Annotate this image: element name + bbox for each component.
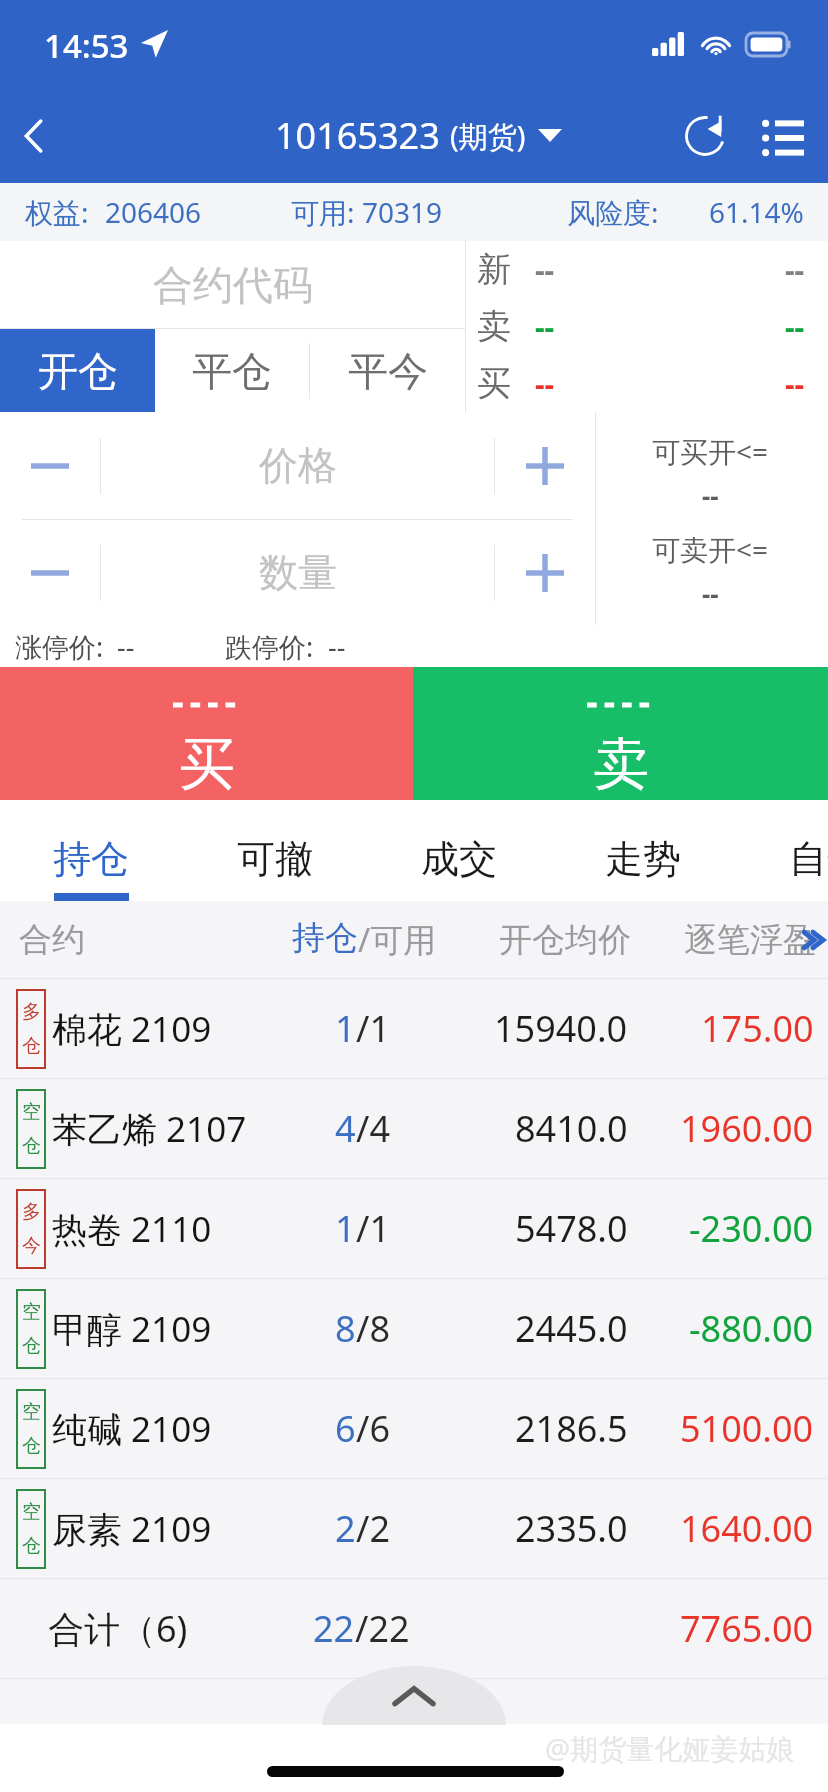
staticText: 仓: [22, 1434, 41, 1458]
button[interactable]: 空: [0, 1379, 828, 1478]
staticText: 持仓: [53, 835, 129, 883]
button[interactable]: Decrease: [0, 520, 100, 625]
staticText: 开仓: [38, 346, 118, 396]
staticText: 1640.00: [680, 1504, 814, 1553]
staticText: --: [328, 628, 346, 665]
button[interactable]: 空: [0, 1279, 828, 1378]
button[interactable]: Increase: [495, 520, 595, 625]
staticText: 合约: [19, 919, 85, 961]
staticText: 可用:: [291, 193, 355, 231]
staticText: 8410.0: [515, 1104, 628, 1153]
button[interactable]: 卖: [413, 667, 828, 800]
staticText: 合计（6): [48, 1604, 188, 1653]
button[interactable]: Refresh: [666, 97, 744, 175]
button[interactable]: 自选: [735, 820, 828, 901]
button[interactable]: 成交: [367, 820, 551, 901]
staticText: 多: [22, 1200, 41, 1224]
button[interactable]: 空: [0, 1079, 828, 1178]
button[interactable]: 买: [0, 667, 413, 800]
staticText: 1: [335, 1204, 356, 1253]
staticText: /6: [356, 1404, 390, 1453]
staticText: 逐笔浮盈: [684, 919, 816, 961]
button[interactable]: 可撤: [183, 820, 367, 901]
button[interactable]: 合计（6): [0, 1579, 828, 1678]
button[interactable]: 持仓: [0, 820, 183, 901]
staticText: /1: [356, 1004, 390, 1053]
staticText: 卖: [593, 729, 649, 800]
button[interactable]: Increase: [495, 412, 595, 519]
staticText: 5100.00: [680, 1404, 814, 1453]
staticText: 22: [313, 1604, 355, 1653]
staticText: 新: [477, 248, 511, 291]
staticText: 8: [335, 1304, 356, 1353]
staticText: -880.00: [689, 1304, 814, 1353]
staticText: 6: [335, 1404, 356, 1453]
staticText: 14:53: [44, 23, 129, 68]
staticText: 仓: [22, 1534, 41, 1558]
button[interactable]: 数量: [101, 520, 494, 625]
staticText: 纯碱 2109: [52, 1405, 212, 1453]
staticText: 多: [22, 1000, 41, 1024]
button[interactable]: Expand: [322, 1666, 506, 1725]
staticText: /4: [356, 1104, 390, 1153]
staticText: 可撤: [237, 835, 313, 883]
staticText: --: [785, 249, 805, 290]
button[interactable]: 多: [0, 979, 828, 1078]
staticText: 可买开<=: [652, 432, 769, 470]
staticText: 数量: [259, 548, 337, 597]
staticText: (期货): [450, 116, 526, 156]
staticText: /22: [355, 1604, 410, 1653]
staticText: 空: [22, 1400, 41, 1424]
staticText: 棉花 2109: [52, 1005, 212, 1053]
staticText: 甲醇 2109: [52, 1305, 212, 1353]
button[interactable]: 走势: [551, 820, 735, 901]
staticText: 开仓均价: [499, 919, 631, 961]
staticText: 自选: [789, 835, 828, 883]
staticText: 仓: [22, 1334, 41, 1358]
button[interactable]: 价格: [101, 412, 494, 519]
staticText: 可卖开<=: [652, 530, 769, 568]
button[interactable]: 合约代码: [0, 241, 465, 328]
button[interactable]: Decrease: [0, 412, 100, 519]
staticText: 平仓: [192, 346, 272, 396]
staticText: --: [702, 576, 719, 611]
staticText: 买: [179, 729, 235, 800]
button[interactable]: 平仓: [155, 329, 309, 412]
staticText: 1960.00: [680, 1104, 814, 1153]
button[interactable]: 开仓: [0, 329, 155, 412]
staticText: --: [785, 363, 805, 404]
staticText: 苯乙烯 2107: [52, 1105, 247, 1153]
staticText: 仓: [22, 1034, 41, 1058]
button[interactable]: 平今: [310, 329, 465, 412]
staticText: /1: [356, 1204, 390, 1253]
staticText: 价格: [259, 441, 337, 490]
staticText: 15940.0: [494, 1004, 628, 1053]
button[interactable]: Menu: [744, 97, 822, 175]
button[interactable]: Back: [0, 101, 70, 171]
button[interactable]: 10165323: [275, 111, 562, 160]
staticText: 2: [335, 1504, 356, 1553]
staticText: 涨停价:: [15, 628, 104, 665]
staticText: 合约代码: [153, 260, 313, 310]
staticText: --: [785, 306, 805, 347]
staticText: -230.00: [689, 1204, 814, 1253]
staticText: 2445.0: [515, 1304, 628, 1353]
staticText: 跌停价:: [225, 628, 314, 665]
staticText: 空: [22, 1100, 41, 1124]
staticText: 10165323: [275, 111, 440, 160]
staticText: --: [702, 478, 719, 513]
staticText: 70319: [362, 193, 443, 231]
staticText: 空: [22, 1300, 41, 1324]
staticText: 今: [22, 1234, 41, 1258]
staticText: /8: [356, 1304, 390, 1353]
staticText: 权益:: [25, 193, 89, 231]
staticText: 空: [22, 1500, 41, 1524]
button[interactable]: 多: [0, 1179, 828, 1278]
staticText: 买: [477, 362, 511, 405]
staticText: /2: [356, 1504, 390, 1553]
button[interactable]: 空: [0, 1479, 828, 1578]
staticText: 206406: [105, 193, 202, 231]
staticText: 风险度:: [567, 193, 659, 231]
staticText: 175.00: [701, 1004, 814, 1053]
staticText: --: [535, 249, 555, 290]
